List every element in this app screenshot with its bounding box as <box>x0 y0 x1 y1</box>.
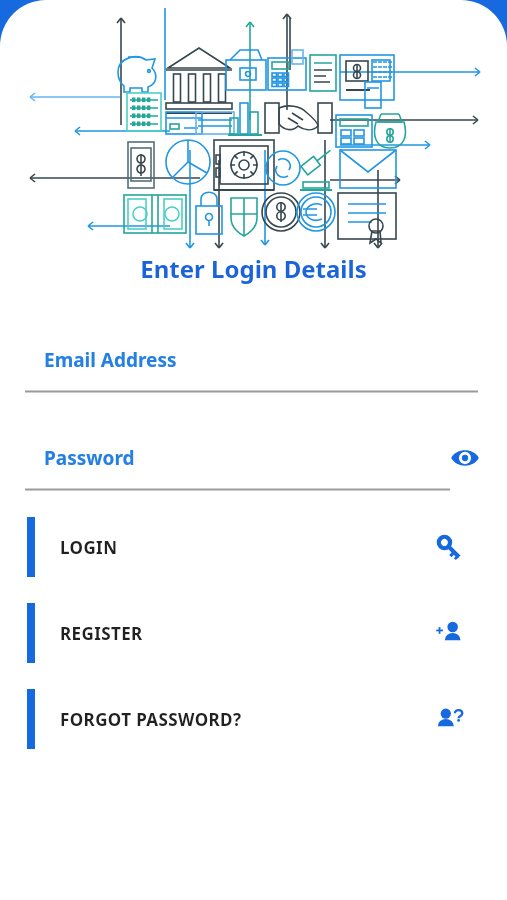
button[interactable]: REGISTER <box>0 603 507 663</box>
staticText: REGISTER <box>60 622 143 645</box>
other: Register <box>425 609 473 657</box>
staticText: FORGOT PASSWORD? <box>60 708 242 731</box>
staticText: LOGIN <box>60 536 118 559</box>
button[interactable]: Show password <box>445 438 485 478</box>
other: Login <box>425 523 473 571</box>
button[interactable]: Password <box>0 437 507 479</box>
button[interactable]: Email Address <box>0 339 507 381</box>
staticText: Password <box>44 445 135 471</box>
button[interactable]: LOGIN <box>0 517 507 577</box>
staticText: Email Address <box>44 347 177 373</box>
staticText: Enter Login Details <box>140 252 367 285</box>
button[interactable]: FORGOT PASSWORD? <box>0 689 507 749</box>
other: Forgot password <box>425 695 473 743</box>
